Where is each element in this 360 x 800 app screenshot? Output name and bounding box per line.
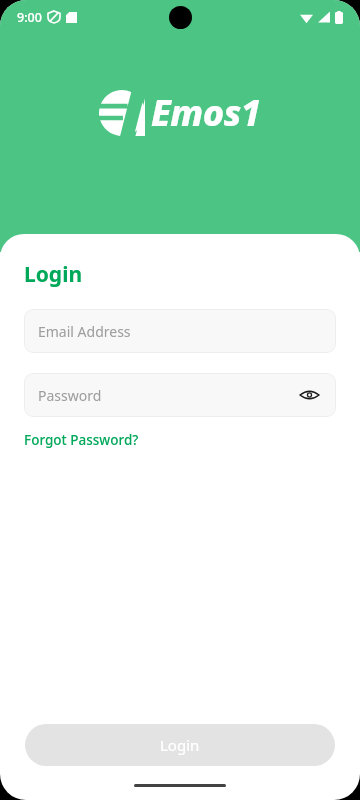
staticText: Login <box>24 260 83 289</box>
staticText: Password <box>38 386 102 405</box>
staticText: Email Address <box>38 322 131 341</box>
button[interactable]: Login <box>25 724 335 766</box>
staticText: Login <box>160 735 200 755</box>
button[interactable]: Email Address <box>24 309 336 353</box>
staticText: 9:00 <box>17 9 42 26</box>
staticText: Forgot Password? <box>24 431 139 449</box>
staticText: Emos1 <box>151 88 261 137</box>
button[interactable]: Password <box>24 373 336 417</box>
button[interactable]: Show password <box>296 382 322 408</box>
button[interactable]: Forgot Password? <box>24 429 139 451</box>
